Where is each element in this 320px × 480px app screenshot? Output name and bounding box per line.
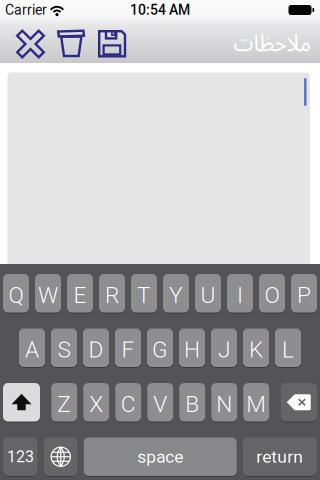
button[interactable]: Q [3, 273, 29, 313]
staticText: F [121, 336, 134, 363]
staticText: M [246, 391, 266, 418]
button[interactable]: P [291, 273, 317, 313]
button[interactable]: M [243, 382, 269, 422]
button[interactable]: S [51, 328, 77, 367]
button[interactable]: R [99, 273, 125, 313]
button[interactable]: K [243, 328, 269, 367]
button[interactable]: 123 [3, 437, 38, 476]
staticText: S [57, 336, 70, 363]
button[interactable]: Y [163, 273, 189, 313]
staticText: D [88, 336, 103, 363]
staticText: I [237, 282, 243, 309]
button[interactable] [57, 29, 86, 58]
button[interactable]: J [211, 328, 237, 367]
button[interactable]: U [195, 273, 221, 313]
staticText: O [264, 282, 279, 309]
staticText: L [282, 336, 294, 363]
button[interactable]: Z [51, 382, 77, 422]
button[interactable]: N [211, 382, 237, 422]
button[interactable]: space [84, 437, 237, 476]
button[interactable]: E [67, 273, 93, 313]
staticText: X [89, 391, 103, 418]
staticText: W [38, 282, 58, 309]
staticText: Carrier [5, 2, 47, 18]
staticText: E [73, 282, 86, 309]
staticText: C [121, 391, 136, 418]
staticText: H [184, 336, 200, 363]
button[interactable]: A [19, 328, 45, 367]
staticText: Q [8, 282, 23, 309]
button[interactable]: I [227, 273, 253, 313]
button[interactable]: L [275, 328, 301, 367]
staticText: 123 [7, 447, 34, 466]
button[interactable]: W [35, 273, 61, 313]
button[interactable]: T [131, 273, 157, 313]
button[interactable]: B [179, 382, 205, 422]
staticText: G [152, 336, 168, 363]
staticText: Y [169, 282, 183, 309]
staticText: U [200, 282, 215, 309]
staticText: K [249, 336, 263, 363]
staticText: B [185, 391, 199, 418]
staticText: N [216, 391, 232, 418]
button[interactable]: O [259, 273, 285, 313]
staticText: 10:54 AM [130, 2, 190, 18]
staticText: space [137, 447, 183, 467]
button[interactable] [280, 382, 317, 422]
button[interactable] [3, 382, 40, 422]
button[interactable]: return [243, 437, 317, 476]
button[interactable]: F [115, 328, 141, 367]
button[interactable]: C [115, 382, 141, 422]
button[interactable] [98, 30, 127, 58]
button[interactable] [16, 29, 45, 58]
staticText: P [297, 282, 311, 309]
button[interactable] [44, 437, 78, 476]
staticText: T [137, 282, 151, 309]
staticText: V [153, 391, 167, 418]
staticText: R [105, 282, 119, 309]
staticText: A [25, 336, 39, 363]
staticText: return [256, 447, 303, 467]
button[interactable]: V [147, 382, 173, 422]
button[interactable]: X [83, 382, 109, 422]
button[interactable]: H [179, 328, 205, 367]
staticText: Z [57, 391, 71, 418]
staticText: ملاحظات [233, 26, 310, 58]
staticText: J [218, 336, 230, 363]
button[interactable]: G [147, 328, 173, 367]
button[interactable]: D [83, 328, 109, 367]
